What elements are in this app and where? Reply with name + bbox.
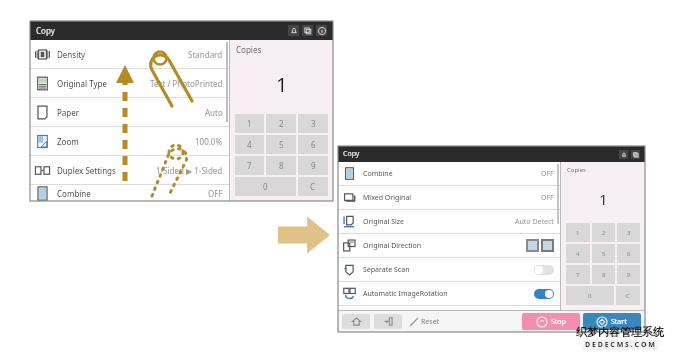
button[interactable]: Start <box>583 313 641 330</box>
staticText: 织梦内容管理系统 <box>576 325 664 339</box>
staticText: Text / PhotoPrinted <box>150 78 223 89</box>
staticText: 3 <box>311 118 316 129</box>
button[interactable]: Jobs <box>631 150 640 159</box>
button[interactable]: C <box>298 177 328 196</box>
staticText: 1 <box>247 118 252 129</box>
staticText: Automatic ImageRotation <box>363 289 448 299</box>
staticText: Stop <box>551 317 566 327</box>
staticText: 100.0% <box>195 136 223 147</box>
button[interactable]: 2 <box>266 114 296 133</box>
staticText: 6 <box>627 250 631 258</box>
button[interactable]: 0 <box>235 177 296 196</box>
staticText: OFF <box>541 169 554 179</box>
button[interactable]: C <box>616 286 640 305</box>
button[interactable]: Combine <box>30 185 229 201</box>
button[interactable]: Combine <box>338 162 560 186</box>
staticText: OFF <box>541 193 554 203</box>
staticText: Copies <box>236 44 262 55</box>
button[interactable]: 8 <box>266 156 296 175</box>
button[interactable]: Button <box>342 314 370 329</box>
button[interactable]: Density <box>30 40 229 69</box>
staticText: Copies <box>567 166 586 174</box>
button[interactable]: Alerts <box>288 25 299 36</box>
button[interactable]: Original Size <box>338 210 560 234</box>
button[interactable]: 6 <box>617 244 640 263</box>
staticText: 2 <box>279 118 284 129</box>
staticText: Auto <box>205 107 223 118</box>
button[interactable]: Reset <box>406 314 444 329</box>
button[interactable]: 8 <box>592 265 615 284</box>
staticText: C <box>626 292 630 300</box>
staticText: Start <box>611 317 627 327</box>
staticText: OFF <box>208 188 223 199</box>
staticText: Mixed Original <box>363 193 412 203</box>
button[interactable]: Duplex Settings <box>30 156 229 185</box>
staticText: Original Size <box>363 217 405 227</box>
staticText: Auto Detect <box>515 217 554 227</box>
button[interactable]: 4 <box>566 244 590 263</box>
staticText: Duplex Settings <box>57 165 116 176</box>
button[interactable]: 3 <box>298 114 328 133</box>
staticText: 9 <box>627 271 631 279</box>
staticText: 4 <box>247 139 252 150</box>
button[interactable]: Stop <box>522 313 580 330</box>
button[interactable]: 3 <box>617 223 640 242</box>
button[interactable]: Separate Scan <box>338 258 560 282</box>
staticText: Original Direction <box>363 241 422 251</box>
staticText: 3 <box>627 229 631 237</box>
button[interactable]: Button <box>374 314 402 329</box>
button[interactable]: 7 <box>235 156 264 175</box>
staticText: Reset <box>421 317 440 327</box>
button[interactable]: 4 <box>235 135 264 154</box>
staticText: 1 <box>576 229 580 237</box>
staticText: 1 <box>599 189 608 209</box>
staticText: Density <box>57 49 86 60</box>
staticText: 2 <box>602 229 606 237</box>
button[interactable]: 7 <box>566 265 590 284</box>
button[interactable]: Mixed Original <box>338 186 560 210</box>
staticText: Copy <box>343 149 360 159</box>
button[interactable]: Toggle <box>534 289 554 299</box>
staticText: Paper <box>57 107 80 118</box>
staticText: 9 <box>311 160 316 171</box>
button[interactable]: Original Direction <box>338 234 560 258</box>
button[interactable]: 9 <box>617 265 640 284</box>
staticText: 5 <box>602 250 606 258</box>
button[interactable]: 5 <box>592 244 615 263</box>
staticText: 1 <box>276 71 288 98</box>
button[interactable]: 2 <box>592 223 615 242</box>
staticText: Zoom <box>57 136 79 147</box>
button[interactable]: 5 <box>266 135 296 154</box>
button[interactable]: Zoom <box>30 127 229 156</box>
staticText: 8 <box>602 271 606 279</box>
staticText: 6 <box>311 139 316 150</box>
staticText: 0 <box>263 181 268 192</box>
button[interactable]: Information <box>316 25 327 36</box>
staticText: 5 <box>279 139 284 150</box>
staticText: Combine <box>363 169 393 179</box>
button[interactable]: 6 <box>298 135 328 154</box>
staticText: Combine <box>57 188 91 199</box>
staticText: Standard <box>188 49 223 60</box>
button[interactable]: 1 <box>566 223 590 242</box>
staticText: 4 <box>576 250 580 258</box>
button[interactable]: Automatic ImageRotation <box>338 282 560 306</box>
button[interactable]: Original Type <box>30 69 229 98</box>
staticText: C <box>310 181 316 192</box>
staticText: 0 <box>588 292 592 300</box>
staticText: 7 <box>576 271 580 279</box>
staticText: D E D E C M S . C O M <box>585 340 655 350</box>
button[interactable]: 0 <box>566 286 614 305</box>
button[interactable]: Paper <box>30 98 229 127</box>
button[interactable]: Jobs <box>302 25 313 36</box>
staticText: 8 <box>279 160 284 171</box>
staticText: Separate Scan <box>363 265 410 275</box>
button[interactable]: 9 <box>298 156 328 175</box>
button[interactable]: Toggle <box>534 265 554 275</box>
button[interactable]: 1 <box>235 114 264 133</box>
button[interactable]: Alerts <box>619 150 628 159</box>
staticText: 1-Sided ▶ 1-Sided <box>156 165 223 176</box>
staticText: Original Type <box>57 78 107 89</box>
